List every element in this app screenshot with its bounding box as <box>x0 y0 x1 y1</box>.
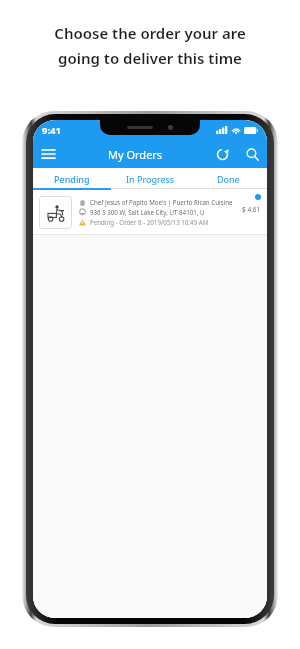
button[interactable]: Refresh <box>207 140 237 168</box>
staticText: 936 S 300 W, Salt Lake City, UT 84101, U <box>90 208 205 216</box>
staticText: Chef Jesus of Papito Moe's | Puerto Rica… <box>90 198 233 206</box>
button[interactable]: Pending <box>33 168 111 190</box>
button[interactable]: Chef Jesus of Papito Moe's | Puerto Rica… <box>33 190 267 234</box>
staticText: Done <box>217 173 240 185</box>
staticText: In Progress <box>126 173 175 185</box>
staticText: Pending - Order 8 - 2019/05/13 10:49 AM <box>90 218 209 226</box>
staticText: Pending <box>54 173 90 185</box>
staticText: going to deliver this time <box>58 48 242 68</box>
staticText: Choose the order your are <box>54 23 246 43</box>
button[interactable]: Menu <box>33 140 63 168</box>
staticText: 9:41 <box>42 124 61 137</box>
staticText: $ 4.61 <box>242 205 261 214</box>
button[interactable]: Search <box>237 140 267 168</box>
staticText: My Orders <box>108 147 163 162</box>
button[interactable]: Done <box>189 168 267 190</box>
button[interactable]: In Progress <box>111 168 189 190</box>
